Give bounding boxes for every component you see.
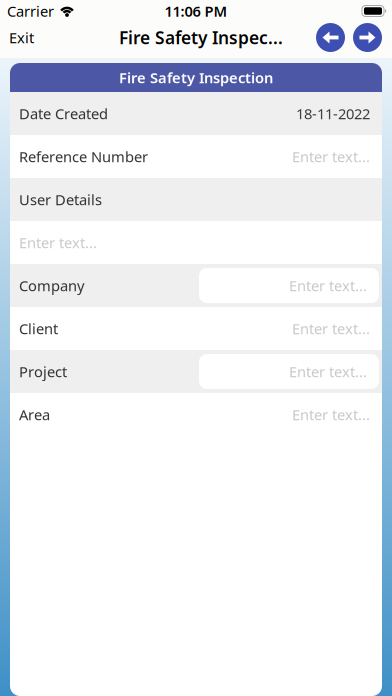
- button[interactable]: User Details: [10, 178, 382, 221]
- staticText: Exit: [9, 28, 34, 47]
- staticText: Enter text...: [292, 147, 370, 166]
- staticText: User Details: [19, 190, 102, 209]
- staticText: Enter text...: [289, 276, 367, 295]
- button[interactable]: Client: [10, 307, 382, 350]
- button[interactable]: Exit: [9, 28, 34, 47]
- staticText: Client: [19, 319, 58, 338]
- staticText: Project: [19, 362, 67, 381]
- button[interactable]: Enter text...: [10, 221, 382, 264]
- staticText: Reference Number: [19, 147, 148, 166]
- button[interactable]: Project: [10, 350, 382, 393]
- button[interactable]: [353, 23, 382, 52]
- staticText: Enter text...: [19, 233, 97, 252]
- staticText: Enter text...: [292, 405, 370, 424]
- staticText: Enter text...: [292, 319, 370, 338]
- staticText: Company: [19, 276, 84, 295]
- staticText: Carrier: [7, 1, 54, 21]
- staticText: Fire Safety Inspec...: [119, 26, 283, 49]
- staticText: Area: [19, 405, 50, 424]
- staticText: Fire Safety Inspection: [119, 68, 273, 87]
- staticText: Date Created: [19, 104, 108, 123]
- staticText: 18-11-2022: [296, 104, 370, 123]
- staticText: Enter text...: [289, 362, 367, 381]
- button[interactable]: Reference Number: [10, 135, 382, 178]
- button[interactable]: Company: [10, 264, 382, 307]
- button[interactable]: Date Created: [10, 92, 382, 135]
- staticText: 11:06 PM: [164, 1, 227, 21]
- button[interactable]: [316, 23, 345, 52]
- button[interactable]: Area: [10, 393, 382, 436]
